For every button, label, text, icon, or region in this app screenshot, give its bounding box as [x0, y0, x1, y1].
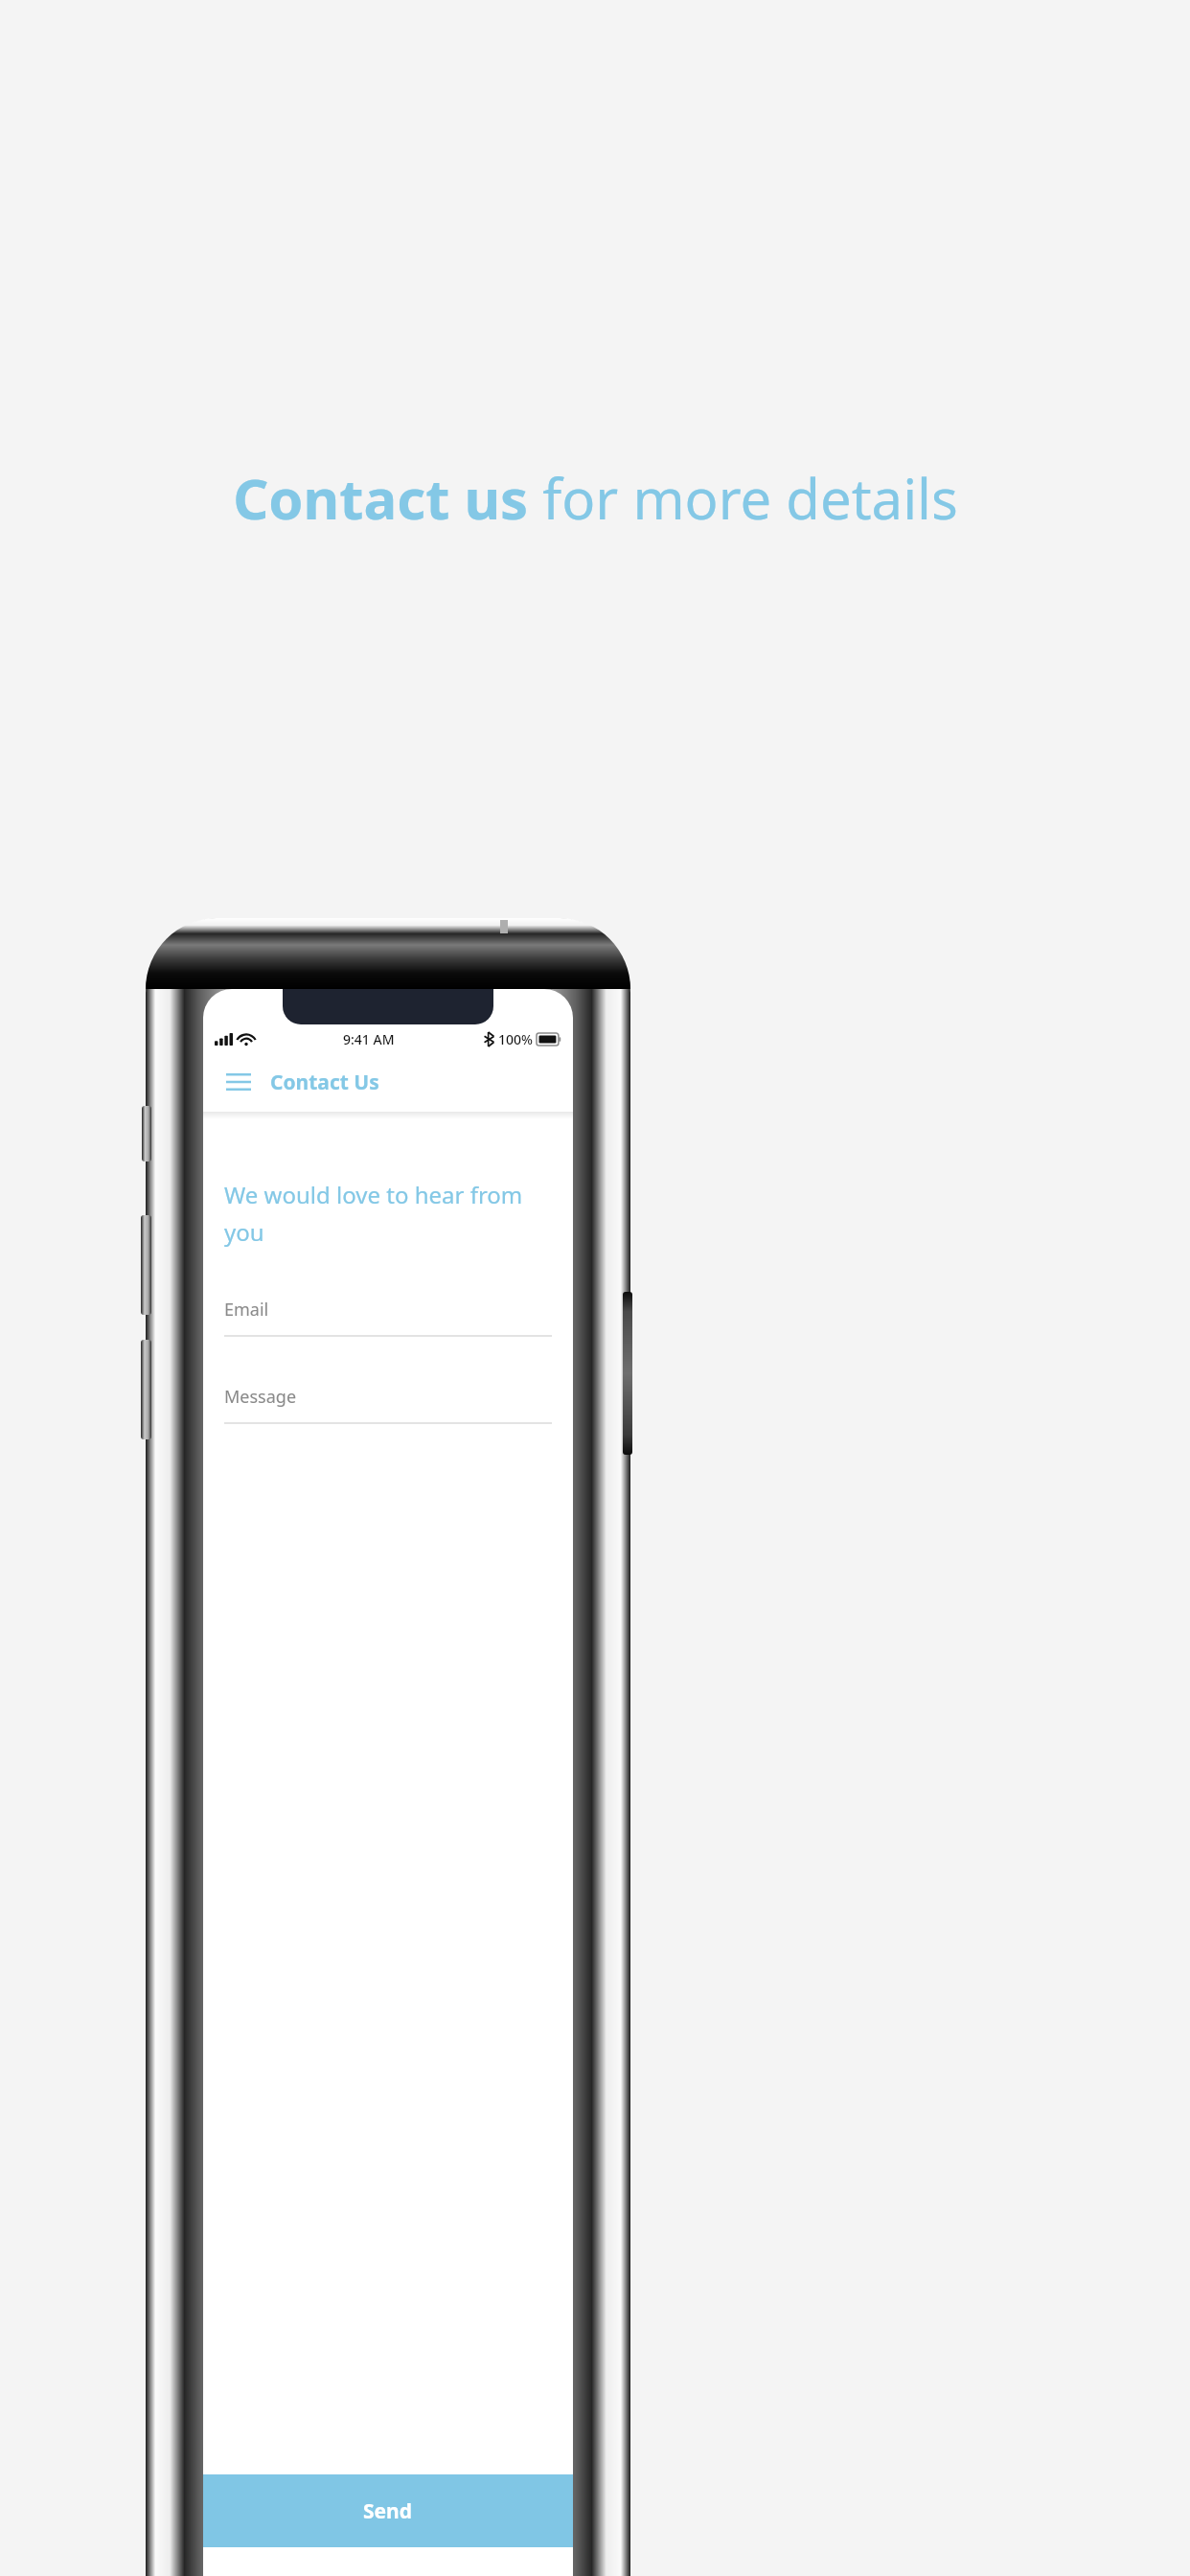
- button[interactable]: Open navigation menu: [222, 1066, 255, 1098]
- staticText: Message: [224, 1385, 297, 1409]
- button[interactable]: Send: [203, 2474, 573, 2547]
- staticText: Send: [363, 2497, 413, 2525]
- staticText: Contact Us: [270, 1069, 379, 1096]
- staticText: We would love to hear from you: [224, 1179, 552, 1248]
- staticText: Email: [224, 1298, 269, 1322]
- button[interactable]: Message: [224, 1385, 552, 1424]
- staticText: 100%: [498, 1030, 533, 1048]
- staticText: 9:41 AM: [343, 1030, 395, 1048]
- button[interactable]: Email: [224, 1298, 552, 1337]
- staticText: Contact us for more details: [233, 460, 958, 536]
